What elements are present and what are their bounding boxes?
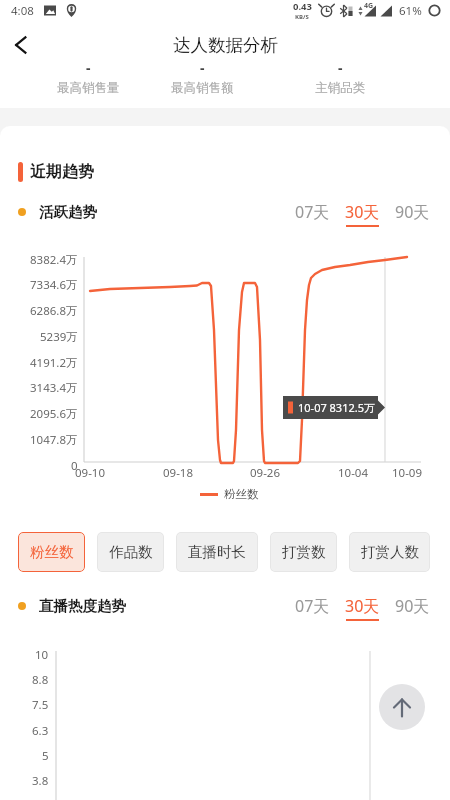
staticText: 30天 <box>345 201 380 223</box>
staticText: 4G <box>364 1 374 11</box>
staticText: 打赏数 <box>282 543 326 561</box>
staticText: 7334.6万 <box>30 277 78 293</box>
button[interactable]: 30天 <box>338 201 387 227</box>
staticText: 粉丝数 <box>30 543 74 561</box>
staticText: 2095.6万 <box>30 406 78 422</box>
staticText: 10-09 <box>392 465 423 481</box>
staticText: KB/S <box>295 13 309 21</box>
staticText: 7.5 <box>32 697 49 713</box>
staticText: 8382.4万 <box>30 252 78 268</box>
staticText: 3143.4万 <box>30 380 78 396</box>
staticText: 最高销售额 <box>171 80 234 96</box>
staticText: 直播时长 <box>188 543 246 561</box>
staticText: 10 <box>35 647 49 663</box>
staticText: 3.8 <box>32 773 49 789</box>
staticText: 粉丝数 <box>224 487 259 501</box>
staticText: 0.43 <box>293 0 312 13</box>
button[interactable]: 打赏数 <box>270 532 337 572</box>
staticText: - <box>200 64 205 77</box>
button[interactable]: 90天 <box>388 595 437 621</box>
staticText: 90天 <box>395 595 430 617</box>
staticText: 09-26 <box>250 465 281 481</box>
button[interactable]: 打赏人数 <box>349 532 430 572</box>
button[interactable]: 作品数 <box>97 532 164 572</box>
staticText: 4:08 <box>11 3 34 19</box>
button[interactable]: 90天 <box>388 201 437 227</box>
button[interactable]: 粉丝数 <box>18 532 85 572</box>
staticText: 直播热度趋势 <box>39 597 126 615</box>
staticText: 07天 <box>295 595 330 617</box>
button[interactable]: 直播时长 <box>176 532 258 572</box>
staticText: 09-10 <box>75 465 106 481</box>
button[interactable]: 07天 <box>288 201 337 227</box>
staticText: 6.3 <box>32 723 49 739</box>
staticText: 10-07 8312.5万 <box>298 400 375 415</box>
staticText: - <box>338 64 343 77</box>
staticText: 作品数 <box>109 543 153 561</box>
button[interactable]: 07天 <box>288 595 337 621</box>
staticText: - <box>86 64 91 77</box>
staticText: 0 <box>71 458 78 474</box>
staticText: 5239万 <box>40 329 78 345</box>
staticText: 活跃趋势 <box>39 203 97 221</box>
staticText: 打赏人数 <box>361 543 419 561</box>
staticText: 达人数据分析 <box>173 34 278 56</box>
staticText: 07天 <box>295 201 330 223</box>
staticText: 8.8 <box>32 672 49 688</box>
staticText: 61% <box>399 3 422 19</box>
staticText: 10-04 <box>338 465 369 481</box>
staticText: 4191.2万 <box>30 355 78 371</box>
button[interactable]: 30天 <box>338 595 387 621</box>
staticText: 近期趋势 <box>30 162 94 182</box>
staticText: 1047.8万 <box>30 432 78 448</box>
button[interactable]: Scroll to top <box>379 684 425 730</box>
button[interactable]: Back <box>0 24 44 64</box>
staticText: 6286.8万 <box>30 303 78 319</box>
staticText: 09-18 <box>163 465 194 481</box>
staticText: 主销品类 <box>315 80 365 96</box>
staticText: 90天 <box>395 201 430 223</box>
staticText: 30天 <box>345 595 380 617</box>
staticText: 5 <box>42 748 49 764</box>
staticText: 最高销售量 <box>57 80 120 96</box>
